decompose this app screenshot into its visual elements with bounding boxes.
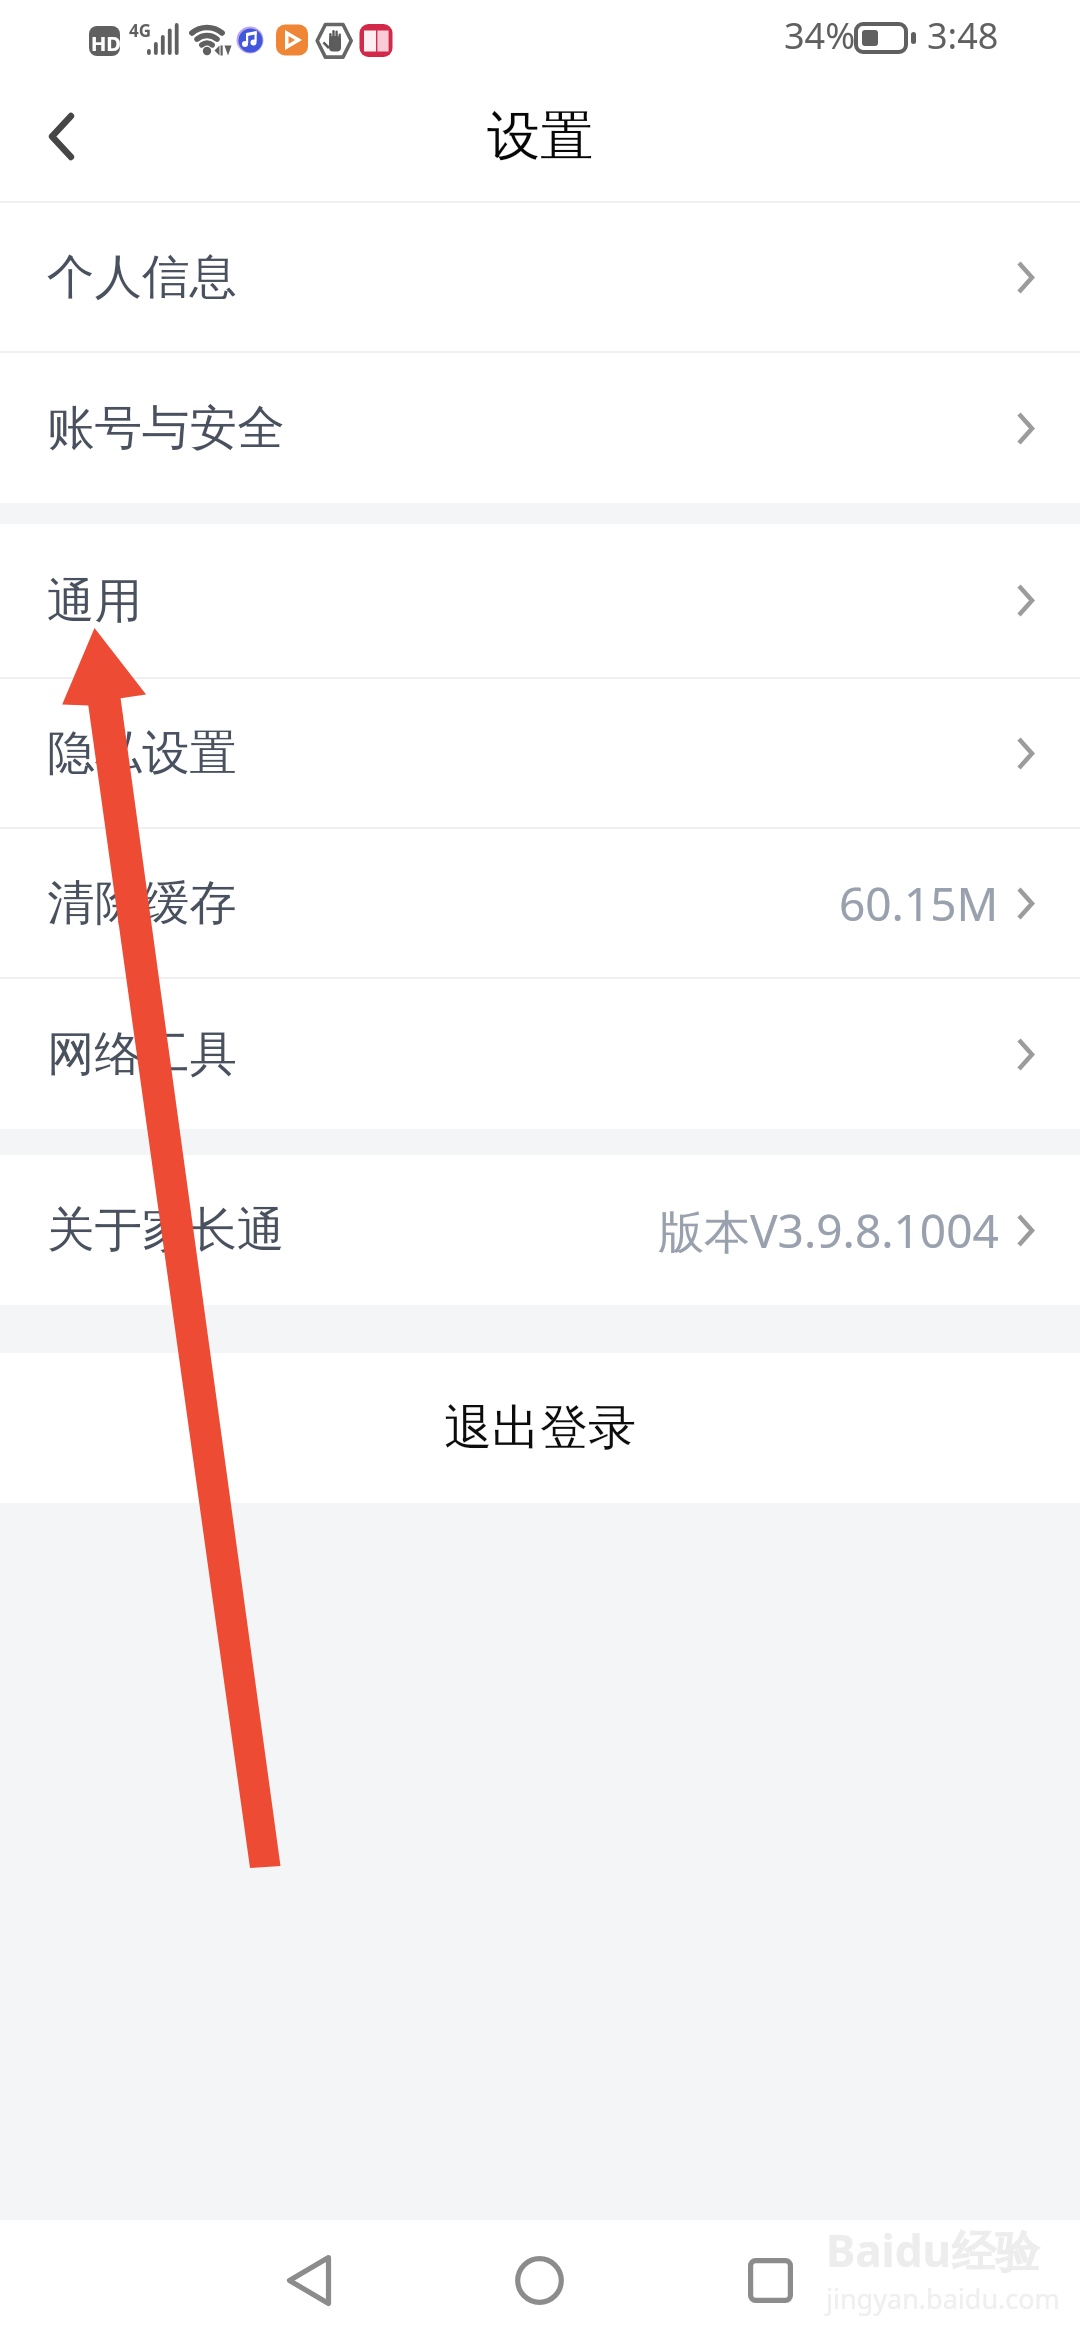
button[interactable]: Recents xyxy=(655,2220,886,2340)
staticText: jingyan.baidu.com xyxy=(826,2280,1060,2317)
staticText: 退出登录 xyxy=(444,1398,636,1458)
staticText: 个人信息 xyxy=(47,247,237,307)
staticText: 34% xyxy=(784,11,856,60)
staticText: 关于家长通 xyxy=(47,1200,285,1260)
button[interactable]: 关于家长通 xyxy=(0,1155,1080,1305)
button[interactable]: 通用 xyxy=(0,524,1080,677)
button[interactable]: 账号与安全 xyxy=(0,353,1080,503)
staticText: 账号与安全 xyxy=(47,398,285,458)
staticText: Baidu经验 xyxy=(826,2220,1040,2280)
staticText: 4G xyxy=(129,19,152,42)
button[interactable]: Back xyxy=(194,2220,424,2340)
staticText: 通用 xyxy=(47,571,142,631)
staticText: 版本V3.9.8.1004 xyxy=(658,1199,999,1262)
staticText: 网络工具 xyxy=(47,1024,237,1084)
staticText: 3:48 xyxy=(927,11,999,60)
button[interactable]: 清除缓存 xyxy=(0,829,1080,977)
staticText: HD xyxy=(91,30,121,57)
staticText: 设置 xyxy=(487,103,593,170)
button[interactable]: 退出登录 xyxy=(0,1353,1080,1503)
staticText: 隐私设置 xyxy=(47,723,237,783)
staticText: 清除缓存 xyxy=(47,873,237,933)
button[interactable]: Home xyxy=(424,2220,655,2340)
button[interactable]: 网络工具 xyxy=(0,979,1080,1129)
button[interactable]: 个人信息 xyxy=(0,203,1080,351)
button[interactable]: 隐私设置 xyxy=(0,679,1080,827)
staticText: 60.15M xyxy=(839,872,999,935)
button[interactable]: Back xyxy=(18,93,104,179)
